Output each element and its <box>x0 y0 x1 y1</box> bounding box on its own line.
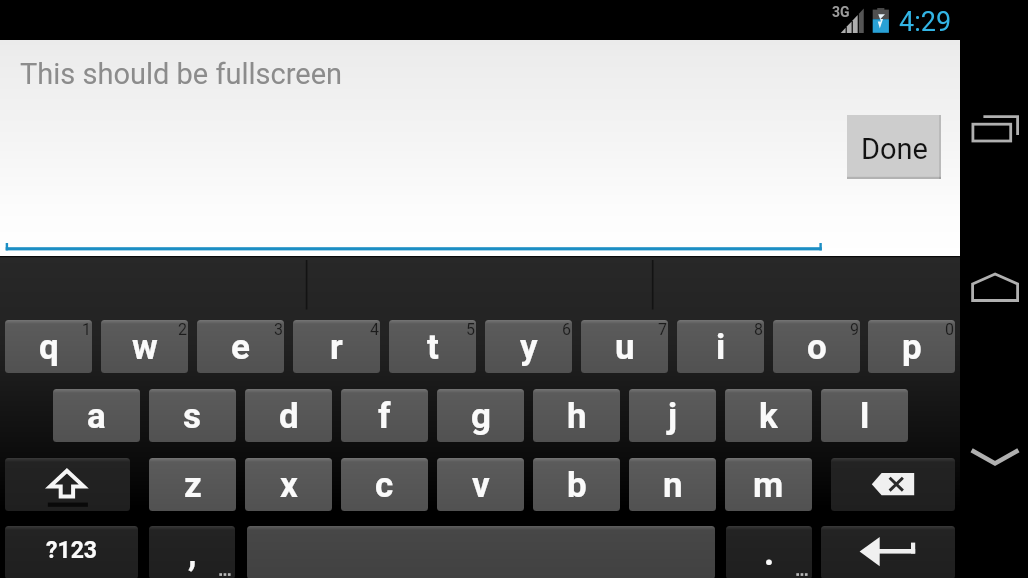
staticText: i <box>716 327 726 368</box>
button[interactable]: 3 <box>197 320 284 373</box>
button[interactable]: m <box>725 458 812 511</box>
button[interactable]: Shift <box>5 458 130 511</box>
button[interactable]: s <box>149 389 236 442</box>
staticText: 3G <box>832 4 850 20</box>
button[interactable]: Done <box>847 115 941 179</box>
staticText: . <box>764 533 775 574</box>
staticText: m <box>753 465 784 506</box>
staticText: 8 <box>754 320 763 339</box>
button[interactable]: , <box>149 526 235 578</box>
button[interactable]: 2 <box>101 320 188 373</box>
staticText: l <box>860 396 870 437</box>
button[interactable]: a <box>53 389 140 442</box>
staticText: o <box>807 327 827 368</box>
button[interactable]: 5 <box>389 320 476 373</box>
button[interactable]: l <box>821 389 908 442</box>
staticText: c <box>375 465 394 506</box>
button[interactable]: f <box>341 389 428 442</box>
staticText: r <box>330 327 343 368</box>
staticText: d <box>279 396 299 437</box>
button[interactable]: 9 <box>773 320 860 373</box>
staticText: 0 <box>945 320 954 339</box>
staticText: 1 <box>82 320 91 339</box>
staticText: z <box>184 465 202 506</box>
staticText: u <box>615 327 635 368</box>
staticText: 4 <box>370 320 379 339</box>
button[interactable]: g <box>437 389 524 442</box>
button[interactable]: 7 <box>581 320 668 373</box>
button[interactable]: x <box>245 458 332 511</box>
button[interactable]: v <box>437 458 524 511</box>
staticText: 7 <box>658 320 667 339</box>
staticText: j <box>668 396 678 437</box>
button[interactable]: d <box>245 389 332 442</box>
staticText: 2 <box>178 320 187 339</box>
button[interactable]: Recent apps <box>960 95 1028 165</box>
button[interactable]: Enter <box>821 526 955 578</box>
button[interactable]: z <box>149 458 236 511</box>
button[interactable]: Delete <box>831 458 955 511</box>
button[interactable]: . <box>726 526 812 578</box>
staticText: w <box>132 327 158 368</box>
button[interactable]: Space <box>247 526 715 578</box>
staticText: 5 <box>466 320 475 339</box>
staticText: 6 <box>562 320 571 339</box>
staticText: h <box>567 396 587 437</box>
staticText: This should be fullscreen <box>20 57 343 91</box>
staticText: 4:29 <box>899 6 952 38</box>
button[interactable]: n <box>629 458 716 511</box>
staticText: g <box>471 396 491 437</box>
staticText: p <box>902 327 922 368</box>
staticText: v <box>472 465 490 506</box>
staticText: 9 <box>850 320 859 339</box>
button[interactable]: 6 <box>485 320 572 373</box>
button[interactable]: 1 <box>5 320 92 373</box>
staticText: b <box>567 465 587 506</box>
button[interactable]: 0 <box>868 320 955 373</box>
staticText: n <box>663 465 683 506</box>
button[interactable]: Back <box>960 420 1028 490</box>
staticText: Done <box>861 132 928 166</box>
staticText: q <box>39 327 59 368</box>
button[interactable]: j <box>629 389 716 442</box>
button[interactable]: Home <box>960 255 1028 325</box>
staticText: t <box>427 327 439 368</box>
button[interactable]: ?123 <box>5 526 138 578</box>
staticText: , <box>188 533 197 574</box>
button[interactable]: 8 <box>677 320 764 373</box>
button[interactable]: k <box>725 389 812 442</box>
staticText: 3 <box>274 320 283 339</box>
staticText: y <box>520 327 538 368</box>
staticText: e <box>231 327 250 368</box>
staticText: a <box>87 396 106 437</box>
staticText: f <box>378 396 391 437</box>
staticText: ?123 <box>46 537 98 564</box>
button[interactable]: b <box>533 458 620 511</box>
staticText: s <box>183 396 202 437</box>
button[interactable]: c <box>341 458 428 511</box>
button[interactable]: 4 <box>293 320 380 373</box>
staticText: x <box>280 465 298 506</box>
button[interactable]: h <box>533 389 620 442</box>
staticText: k <box>759 396 778 437</box>
